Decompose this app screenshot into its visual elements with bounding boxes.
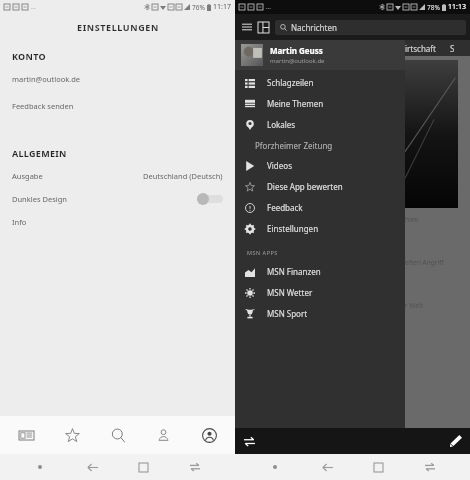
button[interactable]: Feedback senden bbox=[0, 98, 235, 114]
staticText: Martin Geuss bbox=[270, 45, 323, 56]
staticText: ... bbox=[31, 3, 36, 11]
button[interactable]: Home bbox=[132, 456, 154, 478]
button[interactable]: Back bbox=[81, 456, 103, 478]
staticText: Feedback bbox=[267, 202, 303, 213]
button[interactable]: Schlagzeilen bbox=[235, 72, 405, 93]
button[interactable]: Dunkles Design bbox=[0, 189, 235, 209]
staticText: EINSTELLUNGEN bbox=[77, 21, 159, 33]
button[interactable]: Martin Geuss bbox=[235, 40, 405, 70]
staticText: S bbox=[450, 43, 455, 54]
staticText: Meine Themen bbox=[267, 98, 324, 109]
staticText: 76% bbox=[192, 3, 205, 12]
staticText: Info bbox=[12, 217, 27, 227]
staticText: Dunkles Design bbox=[12, 194, 67, 204]
staticText: 11:17 bbox=[213, 2, 231, 12]
staticText: irtschaft bbox=[405, 43, 436, 54]
button[interactable]: Pforzheimer Zeitung bbox=[235, 135, 405, 155]
button[interactable]: Topics bbox=[143, 416, 183, 454]
staticText: Pforzheimer Zeitung bbox=[255, 140, 333, 151]
button[interactable]: Meine Themen bbox=[235, 93, 405, 114]
button[interactable]: Favorites bbox=[52, 416, 92, 454]
button[interactable]: Compose bbox=[448, 433, 464, 449]
button[interactable]: Account bbox=[189, 416, 229, 454]
staticText: Schlagzeilen bbox=[267, 77, 314, 88]
button[interactable]: Recents bbox=[184, 456, 206, 478]
button[interactable]: Feedback bbox=[235, 197, 405, 218]
staticText: 78% bbox=[427, 3, 440, 12]
staticText: Lokales bbox=[267, 119, 296, 130]
button[interactable]: martin@outlook.de bbox=[0, 71, 235, 87]
staticText: Nachrichten bbox=[291, 22, 337, 33]
staticText: martin@outlook.de bbox=[12, 74, 81, 84]
button[interactable]: Info bbox=[0, 214, 235, 230]
staticText: Videos bbox=[267, 160, 292, 171]
button[interactable]: Assistant bbox=[264, 456, 286, 478]
button[interactable]: Menu bbox=[239, 19, 255, 35]
button[interactable]: Recents bbox=[419, 456, 441, 478]
staticText: Ausgabe bbox=[12, 171, 43, 181]
staticText: KONTO bbox=[12, 50, 46, 62]
staticText: MSN Sport bbox=[267, 308, 308, 319]
button[interactable]: Einstellungen bbox=[235, 218, 405, 239]
staticText: MSN Finanzen bbox=[267, 266, 321, 277]
staticText: ... bbox=[266, 3, 271, 11]
staticText: Diese App bewerten bbox=[267, 181, 343, 192]
staticText: MSN APPS bbox=[247, 249, 278, 256]
staticText: Deutschland (Deutsch) bbox=[143, 171, 223, 181]
button[interactable]: MSN Wetter bbox=[235, 282, 405, 303]
button[interactable]: Back bbox=[316, 456, 338, 478]
button[interactable]: Ausgabe bbox=[0, 167, 235, 185]
button[interactable]: Search bbox=[98, 416, 138, 454]
button[interactable]: MSN Sport bbox=[235, 303, 405, 324]
button[interactable]: Lokales bbox=[235, 114, 405, 135]
button[interactable]: Videos bbox=[235, 155, 405, 176]
staticText: 11:13 bbox=[448, 2, 466, 12]
staticText: Einstellungen bbox=[267, 223, 319, 234]
button[interactable]: Grid view bbox=[255, 19, 271, 35]
staticText: hlen bbox=[405, 215, 419, 224]
button[interactable]: News bbox=[6, 416, 46, 454]
staticText: Feedback senden bbox=[12, 101, 74, 111]
staticText: r Welt bbox=[405, 301, 423, 310]
staticText: martin@outlook.de bbox=[270, 57, 325, 65]
button[interactable]: Nachrichten bbox=[275, 20, 466, 35]
staticText: ALLGEMEIN bbox=[12, 147, 67, 159]
button[interactable]: MSN Finanzen bbox=[235, 261, 405, 282]
button[interactable]: Diese App bewerten bbox=[235, 176, 405, 197]
button[interactable]: Refresh bbox=[241, 433, 257, 449]
staticText: eften Angriff bbox=[405, 258, 444, 267]
button[interactable]: Assistant bbox=[29, 456, 51, 478]
staticText: MSN Wetter bbox=[267, 287, 313, 298]
button[interactable]: Home bbox=[367, 456, 389, 478]
